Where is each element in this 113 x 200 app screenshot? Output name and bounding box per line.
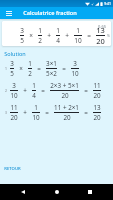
staticText: 10: [74, 36, 82, 45]
staticText: 10: [10, 91, 18, 100]
staticText: +: [23, 108, 27, 117]
staticText: Solution: [4, 50, 26, 57]
staticText: =: [45, 108, 49, 117]
staticText: 3: [10, 59, 14, 68]
staticText: +: [23, 86, 27, 95]
staticText: 13: [93, 103, 101, 112]
staticText: 11: [10, 103, 18, 112]
staticText: +: [65, 31, 69, 40]
staticText: 4: [56, 36, 60, 45]
staticText: 11 + 2×1: [54, 103, 79, 112]
staticText: 1: [76, 26, 80, 35]
staticText: =: [41, 86, 45, 95]
button[interactable]: Home: [47, 184, 67, 200]
staticText: 2: [3, 88, 9, 93]
staticText: 2×3 + 5×1: [50, 81, 79, 90]
staticText: 20: [93, 113, 101, 122]
staticText: 3: [3, 110, 9, 115]
staticText: 20: [10, 113, 18, 122]
button[interactable]: Recent apps: [80, 184, 100, 200]
staticText: 20: [96, 36, 105, 46]
staticText: 1: [28, 59, 32, 68]
staticText: ×: [29, 31, 33, 40]
staticText: =: [84, 108, 88, 117]
staticText: Calculatrice fraction: [23, 9, 77, 17]
staticText: 5×2: [46, 69, 57, 78]
staticText: 1: [56, 26, 60, 35]
staticText: 5: [20, 36, 24, 45]
staticText: 5: [10, 69, 14, 78]
staticText: =: [37, 64, 41, 73]
staticText: =: [87, 31, 91, 40]
staticText: 4: [32, 91, 36, 100]
button[interactable]: Back: [13, 184, 33, 200]
button[interactable]: RETOUR: [2, 164, 23, 174]
staticText: 1: [38, 26, 42, 35]
staticText: =: [62, 64, 66, 73]
staticText: 20: [61, 91, 69, 100]
staticText: 20: [63, 113, 71, 122]
staticText: 11: [93, 81, 101, 90]
staticText: =: [84, 86, 88, 95]
staticText: 2: [38, 36, 42, 45]
staticText: 0.65: [98, 24, 106, 29]
staticText: 13: [96, 25, 105, 35]
staticText: 3×1: [46, 59, 57, 68]
staticText: 9:41: [104, 1, 111, 6]
staticText: 20: [93, 91, 101, 100]
staticText: +: [47, 31, 51, 40]
button[interactable]: Open navigation menu: [0, 7, 17, 19]
staticText: ×: [19, 64, 23, 73]
staticText: 3: [20, 26, 24, 35]
staticText: 3: [12, 81, 16, 90]
staticText: RETOUR: [4, 166, 21, 172]
staticText: 2: [28, 69, 32, 78]
staticText: 1: [3, 66, 9, 71]
staticText: 10: [71, 69, 79, 78]
staticText: 10: [32, 113, 40, 122]
staticText: 1: [34, 103, 38, 112]
staticText: 1: [32, 81, 36, 90]
staticText: 3: [73, 59, 77, 68]
staticText: %: [107, 33, 110, 38]
